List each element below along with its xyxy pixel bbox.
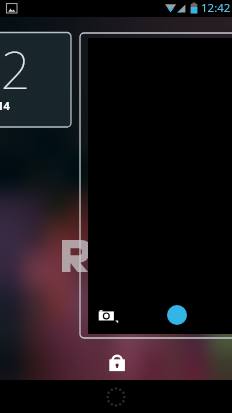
button[interactable]: Unlock — [107, 349, 124, 371]
button[interactable]: Shutter — [167, 305, 187, 325]
button[interactable]: Home — [102, 383, 130, 411]
button[interactable]: Camera — [88, 38, 232, 334]
staticText: 12:42 — [201, 0, 231, 16]
button[interactable]: 12 — [0, 32, 71, 127]
button[interactable]: Camera — [98, 306, 119, 327]
staticText: 014 — [0, 98, 10, 113]
staticText: 12 — [0, 33, 31, 104]
